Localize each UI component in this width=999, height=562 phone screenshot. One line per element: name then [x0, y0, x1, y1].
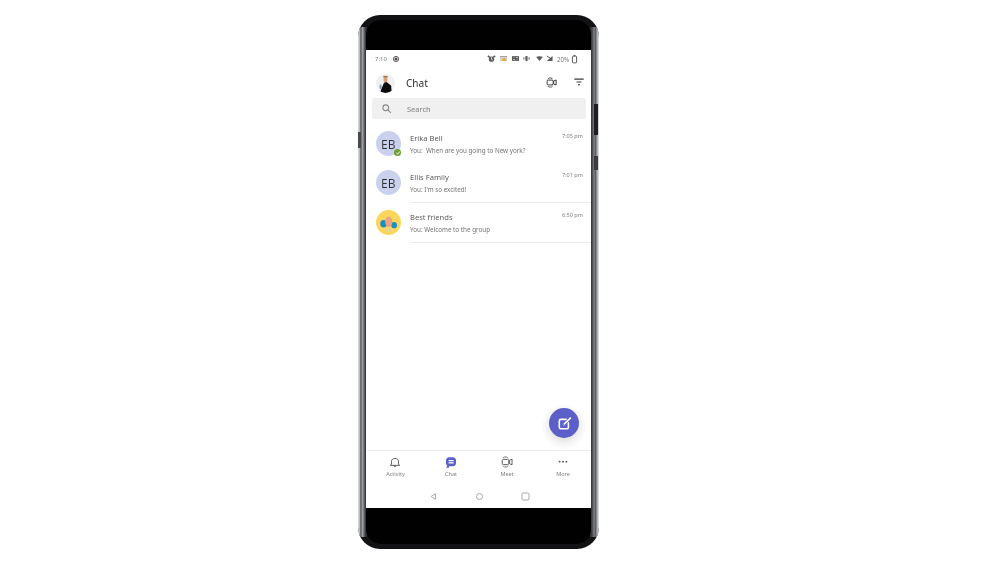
button[interactable]: More — [535, 451, 591, 477]
button[interactable]: Profile — [376, 74, 395, 93]
staticText: Search — [407, 104, 431, 114]
button[interactable]: Chat — [423, 451, 479, 477]
staticText: You: Welcome to the group — [410, 225, 491, 234]
staticText: Activity — [386, 470, 405, 477]
button[interactable]: Back — [421, 485, 445, 508]
staticText: Best friends — [410, 212, 453, 222]
staticText: Erika Bell — [410, 133, 443, 143]
staticText: Ellis Family — [410, 172, 449, 182]
staticText: Chat — [406, 76, 429, 90]
button[interactable]: EB — [367, 124, 591, 163]
staticText: 7:05 pm — [562, 132, 583, 139]
button[interactable]: Home — [467, 485, 491, 508]
button[interactable]: Recents — [513, 485, 537, 508]
staticText: You: When are you going to New york? — [410, 146, 526, 155]
button[interactable]: Search — [372, 98, 586, 119]
staticText: You: I'm so excited! — [410, 185, 467, 194]
staticText: EB — [381, 136, 396, 152]
button[interactable]: EB — [367, 163, 591, 202]
staticText: 20% — [557, 55, 570, 63]
staticText: Meet — [500, 470, 514, 477]
button[interactable]: New chat — [549, 408, 579, 438]
staticText: 7:01 pm — [562, 171, 583, 178]
staticText: EB — [381, 175, 396, 191]
button[interactable]: Filter — [570, 73, 587, 90]
staticText: 7:10 — [375, 55, 387, 63]
button[interactable]: Meet — [479, 451, 535, 477]
staticText: Chat — [445, 470, 457, 477]
staticText: More — [556, 470, 570, 477]
button[interactable]: Activity — [367, 451, 423, 477]
staticText: 6:50 pm — [562, 211, 583, 218]
button[interactable]: Best friends — [367, 203, 591, 242]
button[interactable]: Meet now — [543, 74, 560, 91]
